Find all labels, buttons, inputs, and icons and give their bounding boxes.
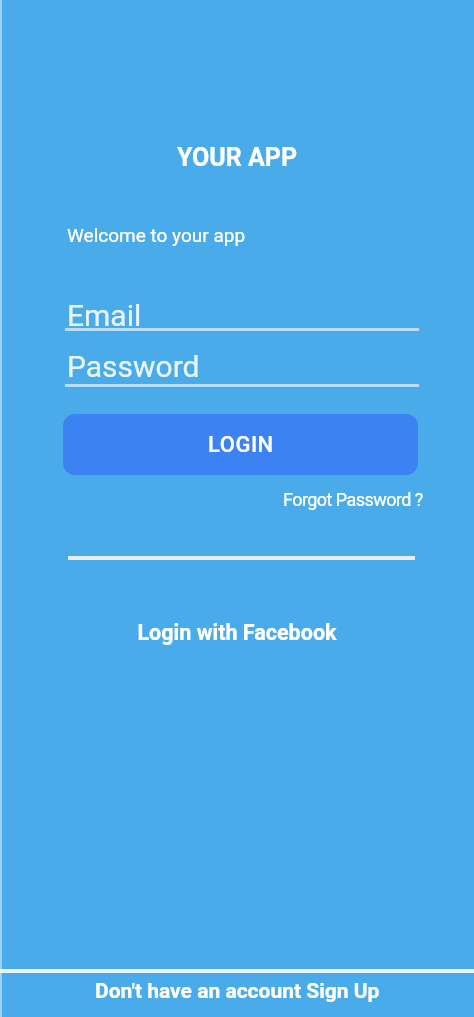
button[interactable]: LOGIN bbox=[63, 414, 418, 475]
staticText: Email bbox=[67, 298, 142, 333]
staticText: Don't have an account Sign Up bbox=[95, 979, 380, 1004]
staticText: YOUR APP bbox=[0, 143, 474, 172]
button[interactable]: Login with Facebook bbox=[0, 620, 474, 645]
staticText: Forgot Password ? bbox=[283, 489, 423, 510]
staticText: Welcome to your app bbox=[67, 224, 246, 246]
button[interactable]: Forgot Password ? bbox=[283, 489, 423, 510]
staticText: LOGIN bbox=[208, 432, 274, 458]
button[interactable]: Don't have an account Sign Up bbox=[0, 973, 474, 1017]
staticText: Password bbox=[67, 349, 200, 384]
